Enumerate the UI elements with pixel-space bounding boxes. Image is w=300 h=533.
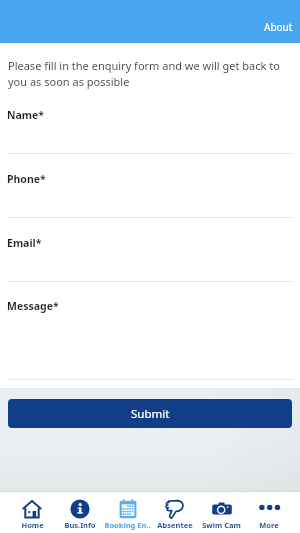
staticText: Bus.Info xyxy=(64,520,96,530)
button[interactable]: Bus.Info xyxy=(56,492,104,533)
button[interactable]: More xyxy=(245,492,292,533)
staticText: Please fill in the enquiry form and we w… xyxy=(8,58,290,89)
button[interactable]: Swim Cam xyxy=(198,492,245,533)
staticText: Absentee xyxy=(157,520,193,530)
staticText: Home xyxy=(21,520,44,530)
button[interactable]: Booking En... xyxy=(104,492,151,533)
staticText: Submit xyxy=(131,406,170,422)
button[interactable]: Home xyxy=(8,492,56,533)
staticText: More xyxy=(259,520,279,530)
staticText: About xyxy=(264,20,293,34)
staticText: Email* xyxy=(7,236,42,250)
staticText: Phone* xyxy=(7,172,46,186)
staticText: Name* xyxy=(7,108,45,122)
button[interactable]: Absentee xyxy=(151,492,198,533)
button[interactable]: Submit xyxy=(8,399,292,428)
staticText: Swim Cam xyxy=(202,520,241,530)
button[interactable]: About xyxy=(254,0,300,39)
staticText: Booking En... xyxy=(104,520,151,530)
staticText: Message* xyxy=(7,299,59,313)
